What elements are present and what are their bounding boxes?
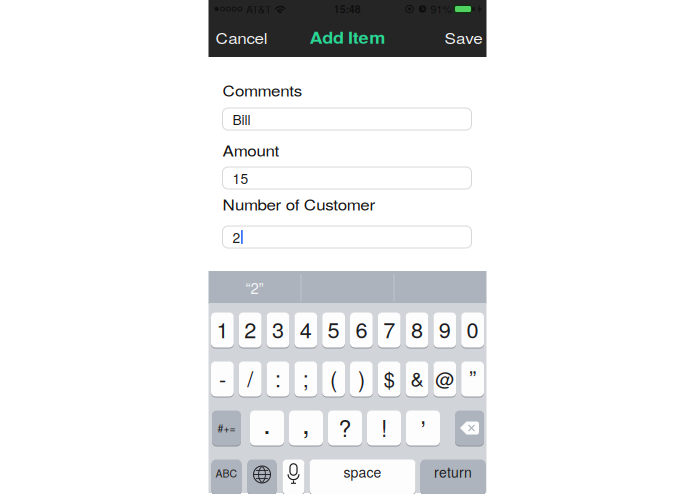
- button[interactable]: .: [250, 410, 284, 446]
- button[interactable]: Delete: [455, 410, 484, 446]
- button[interactable]: (: [322, 361, 345, 397]
- staticText: 9: [439, 313, 451, 345]
- staticText: 91%: [430, 1, 451, 16]
- button[interactable]: 6: [350, 312, 373, 348]
- staticText: 8: [411, 313, 423, 345]
- button[interactable]: Dictate: [282, 459, 304, 494]
- button[interactable]: ’: [406, 410, 440, 446]
- staticText: (: [330, 362, 337, 394]
- staticText: Amount: [222, 139, 272, 161]
- staticText: ?: [338, 410, 351, 443]
- button[interactable]: !: [367, 410, 401, 446]
- staticText: 2: [244, 313, 256, 345]
- button[interactable]: 3: [267, 312, 289, 348]
- staticText: AT&T: [246, 1, 271, 16]
- staticText: space: [343, 462, 381, 482]
- button[interactable]: 9: [433, 312, 456, 348]
- staticText: :: [275, 362, 281, 394]
- button[interactable]: Next keyboard: [247, 459, 276, 494]
- button[interactable]: Suggestion: [394, 271, 486, 304]
- button[interactable]: Suggestion: [301, 271, 393, 304]
- button[interactable]: 8: [406, 312, 428, 348]
- staticText: 3: [272, 313, 284, 345]
- button[interactable]: ABC: [211, 459, 241, 494]
- staticText: #+=: [217, 420, 235, 435]
- button[interactable]: /: [239, 361, 262, 397]
- button[interactable]: &: [406, 361, 428, 397]
- staticText: ’: [420, 412, 425, 446]
- staticText: 0: [467, 313, 479, 345]
- staticText: @: [435, 364, 454, 392]
- staticText: ;: [303, 362, 309, 394]
- button[interactable]: ?: [328, 410, 362, 446]
- button[interactable]: @: [433, 361, 456, 397]
- staticText: Number of Customer: [222, 193, 357, 215]
- button[interactable]: Save: [449, 27, 486, 48]
- staticText: .: [263, 402, 271, 442]
- staticText: Save: [449, 27, 482, 48]
- staticText: “2”: [245, 277, 263, 298]
- staticText: ): [358, 362, 365, 394]
- staticText: ABC: [215, 465, 237, 480]
- button[interactable]: $: [378, 361, 401, 397]
- button[interactable]: :: [267, 361, 289, 397]
- button[interactable]: 0: [461, 312, 484, 348]
- button[interactable]: Suggestion 2: [208, 271, 300, 304]
- staticText: 2: [232, 227, 240, 247]
- staticText: 7: [383, 313, 395, 345]
- staticText: Cancel: [215, 27, 260, 48]
- button[interactable]: 2: [239, 312, 262, 348]
- staticText: 5: [328, 313, 340, 345]
- button[interactable]: ;: [294, 361, 317, 397]
- button[interactable]: ”: [461, 361, 484, 397]
- staticText: 4: [300, 313, 312, 345]
- button[interactable]: Text field 15: [222, 167, 471, 189]
- staticText: 6: [355, 313, 367, 345]
- staticText: 1: [216, 313, 228, 345]
- button[interactable]: Text field Bill: [222, 108, 471, 130]
- staticText: 15: [232, 168, 248, 188]
- button[interactable]: 1: [211, 312, 234, 348]
- button[interactable]: #+=: [212, 410, 241, 446]
- staticText: Bill: [232, 109, 250, 129]
- staticText: $: [384, 364, 395, 392]
- button[interactable]: return: [420, 459, 485, 494]
- button[interactable]: Cancel: [208, 27, 260, 48]
- button[interactable]: space: [309, 459, 415, 494]
- staticText: ”: [469, 361, 476, 393]
- staticText: ,: [302, 402, 310, 442]
- button[interactable]: ,: [289, 410, 323, 446]
- button[interactable]: Text field 2: [222, 226, 471, 248]
- staticText: return: [434, 462, 472, 482]
- staticText: /: [247, 362, 253, 394]
- button[interactable]: -: [211, 361, 234, 397]
- button[interactable]: 5: [322, 312, 345, 348]
- staticText: -: [219, 362, 226, 394]
- button[interactable]: 4: [294, 312, 317, 348]
- button[interactable]: ): [350, 361, 373, 397]
- staticText: &: [410, 364, 423, 392]
- staticText: !: [381, 410, 387, 443]
- staticText: 15:48: [334, 1, 361, 16]
- staticText: Comments: [222, 79, 293, 101]
- staticText: Add Item: [315, 26, 380, 49]
- button[interactable]: 7: [378, 312, 401, 348]
